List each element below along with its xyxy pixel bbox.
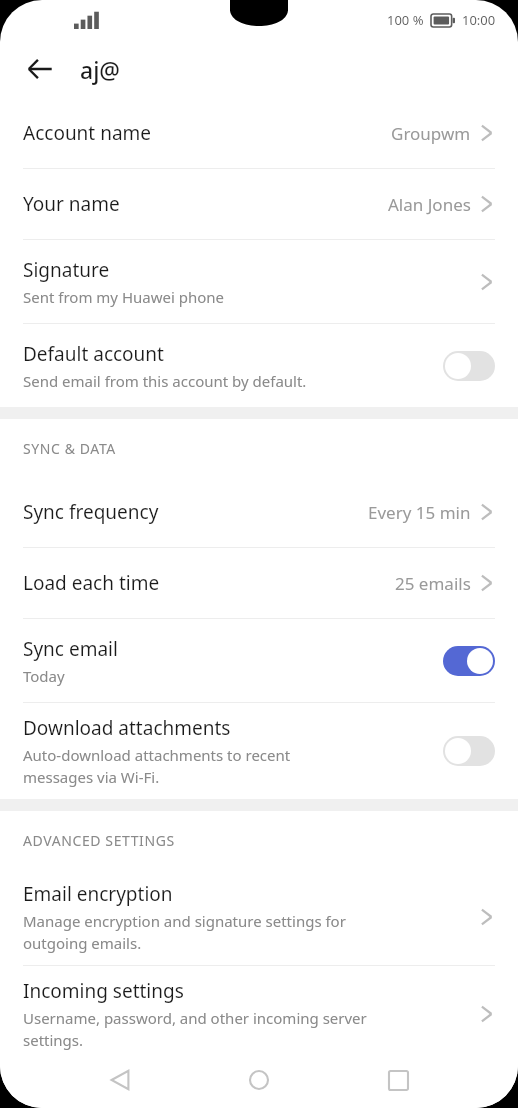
- button[interactable]: Off: [443, 736, 495, 766]
- staticText: SYNC & DATA: [23, 439, 116, 458]
- button[interactable]: Back: [96, 1056, 144, 1104]
- staticText: Incoming settings: [23, 978, 184, 1004]
- staticText: Auto-download attachments to recent mess…: [23, 745, 291, 788]
- staticText: Your name: [23, 191, 120, 217]
- button[interactable]: Default account: [0, 324, 518, 407]
- staticText: Today: [23, 666, 65, 686]
- staticText: Email encryption: [23, 881, 173, 907]
- button[interactable]: Email encryption: [0, 869, 518, 965]
- staticText: Signature: [23, 257, 110, 283]
- staticText: Username, password, and other incoming s…: [23, 1008, 367, 1051]
- button[interactable]: Back: [14, 43, 66, 95]
- button[interactable]: Load each time: [0, 548, 518, 618]
- button[interactable]: Incoming settings: [0, 966, 518, 1062]
- staticText: Account name: [23, 120, 152, 146]
- button[interactable]: Off: [443, 351, 495, 381]
- staticText: 100 %: [387, 11, 424, 29]
- staticText: 25 emails: [395, 572, 471, 595]
- button[interactable]: Sync frequency: [0, 477, 518, 547]
- button[interactable]: On: [443, 646, 495, 676]
- button[interactable]: Your name: [0, 169, 518, 239]
- staticText: Download attachments: [23, 715, 231, 741]
- button[interactable]: Sync email: [0, 619, 518, 702]
- staticText: Load each time: [23, 570, 160, 596]
- button[interactable]: Home: [235, 1056, 283, 1104]
- staticText: Groupwm: [391, 122, 471, 145]
- staticText: Sync frequency: [23, 499, 159, 525]
- staticText: ADVANCED SETTINGS: [23, 831, 175, 850]
- button[interactable]: Download attachments: [0, 703, 518, 799]
- staticText: aj@: [80, 54, 121, 85]
- button[interactable]: Account name: [0, 98, 518, 168]
- staticText: 10:00: [462, 11, 496, 29]
- staticText: Sent from my Huawei phone: [23, 287, 225, 307]
- staticText: Default account: [23, 341, 164, 367]
- staticText: Send email from this account by default.: [23, 371, 307, 391]
- button[interactable]: Recents: [374, 1056, 422, 1104]
- staticText: Manage encryption and signature settings…: [23, 911, 346, 954]
- staticText: Sync email: [23, 636, 118, 662]
- button[interactable]: Signature: [0, 240, 518, 323]
- staticText: Alan Jones: [388, 193, 471, 216]
- staticText: Every 15 min: [368, 501, 471, 524]
